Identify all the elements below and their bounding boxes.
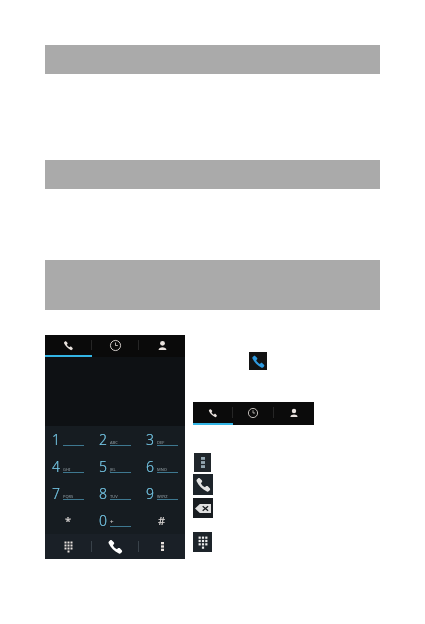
button[interactable]: Key 5 (91, 453, 138, 480)
staticText: 9 (146, 484, 154, 503)
button[interactable]: Key * (45, 507, 91, 534)
staticText: 4 (52, 457, 60, 476)
staticText: 5 (99, 457, 107, 476)
button[interactable]: Key 8 (91, 480, 138, 507)
staticText: JKL (110, 467, 116, 472)
button[interactable]: Phone app icon (249, 352, 267, 370)
button[interactable]: Dialer tab (45, 335, 91, 355)
button[interactable]: Key # (138, 507, 185, 534)
button[interactable]: Key 0 (91, 507, 138, 534)
button[interactable]: Key 1 (45, 426, 91, 453)
button[interactable]: Dialpad (45, 534, 91, 559)
staticText: MNO (157, 467, 167, 472)
staticText: 6 (146, 457, 154, 476)
staticText: 8 (99, 484, 107, 503)
staticText: PQRS (63, 494, 74, 499)
button[interactable]: Dialpad (193, 532, 212, 552)
button[interactable]: Contacts tab (274, 402, 314, 423)
button[interactable]: Key 9 (138, 480, 185, 507)
button[interactable]: Key 3 (138, 426, 185, 453)
staticText: ABC (110, 440, 118, 445)
button[interactable]: Overflow menu (194, 453, 211, 472)
staticText: 0 (99, 511, 107, 530)
staticText: TUV (110, 494, 118, 499)
button[interactable]: Recents tab (92, 335, 138, 355)
staticText: # (158, 513, 166, 528)
staticText: WXYZ (157, 494, 168, 499)
button[interactable]: More options (139, 534, 185, 559)
button[interactable]: Key 6 (138, 453, 185, 480)
staticText: 3 (146, 430, 154, 449)
staticText: + (110, 518, 114, 526)
button[interactable]: Dialer tab (193, 402, 232, 423)
button[interactable]: Recents tab (233, 402, 273, 423)
button[interactable]: Key 4 (45, 453, 91, 480)
staticText: * (65, 513, 72, 528)
button[interactable]: Dialer tabs (193, 402, 314, 425)
button[interactable]: Key 7 (45, 480, 91, 507)
button[interactable]: Call (92, 534, 138, 559)
staticText: 1 (52, 430, 60, 449)
staticText: 7 (52, 484, 60, 503)
button[interactable]: Call (193, 474, 213, 495)
button[interactable]: Key 2 (91, 426, 138, 453)
staticText: GHI (63, 467, 71, 472)
button[interactable]: Backspace (193, 498, 213, 518)
button[interactable]: Contacts tab (139, 335, 185, 355)
staticText: 2 (99, 430, 107, 449)
staticText: DEF (157, 440, 165, 445)
